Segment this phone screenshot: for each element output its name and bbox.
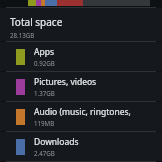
staticText: 119MB	[34, 119, 55, 127]
staticText: 2.47GB	[34, 149, 55, 157]
button[interactable]: Pictures, videos	[0, 72, 162, 101]
staticText: 1.37GB	[34, 89, 55, 97]
other: Storage usage bar	[0, 0, 162, 7]
staticText: Pictures, videos	[34, 76, 97, 88]
staticText: 28.13GB	[10, 31, 35, 39]
staticText: Audio (music, ringtones, podc..	[34, 106, 156, 118]
button[interactable]: Downloads	[0, 132, 162, 161]
staticText: Apps	[34, 46, 54, 58]
button[interactable]: Apps	[0, 42, 162, 71]
staticText: 0.92GB	[34, 59, 55, 67]
button[interactable]: Total space	[0, 8, 162, 41]
button[interactable]: Audio (music, ringtones, podc..	[0, 102, 162, 131]
staticText: Downloads	[34, 136, 79, 148]
staticText: Total space	[10, 15, 63, 29]
